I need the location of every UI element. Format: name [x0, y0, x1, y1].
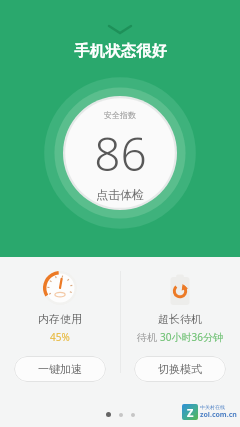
button[interactable]: Collapse: [98, 16, 142, 42]
staticText: 超长待机: [158, 312, 202, 326]
button[interactable]: 切换模式: [134, 356, 226, 382]
staticText: 切换模式: [158, 362, 202, 376]
staticText: 中关村在线: [200, 404, 225, 410]
staticText: zol.com.cn: [200, 410, 237, 420]
staticText: 待机: [137, 330, 160, 344]
staticText: 一键加速: [38, 362, 82, 376]
staticText: 45%: [50, 330, 70, 344]
staticText: 内存使用: [38, 312, 82, 326]
button[interactable]: 安全指数: [65, 110, 175, 202]
staticText: 点击体检: [96, 187, 144, 202]
staticText: 30小时36分钟: [160, 330, 223, 344]
staticText: 安全指数: [104, 110, 136, 120]
staticText: 手机状态很好: [74, 42, 167, 61]
staticText: Z: [187, 405, 194, 420]
button[interactable]: 一键加速: [14, 356, 106, 382]
staticText: 86: [94, 122, 147, 185]
